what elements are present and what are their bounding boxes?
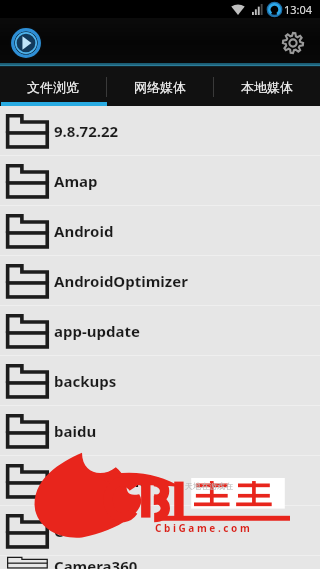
button[interactable]: C (0, 506, 320, 555)
button[interactable]: Settings (274, 24, 312, 62)
staticText: 13:04 (284, 2, 313, 17)
staticText: 9.8.72.22 (54, 121, 119, 141)
button[interactable]: Amap (0, 156, 320, 205)
staticText: 网络媒体 (134, 79, 186, 95)
staticText: 文件浏览 (27, 79, 79, 95)
staticText: C b i G a m e . c o m (155, 521, 250, 535)
staticText: C (54, 521, 64, 541)
staticText: Amap (54, 171, 98, 191)
button[interactable]: 文件浏览 (0, 67, 106, 106)
staticText: backups (54, 371, 117, 391)
button[interactable]: AndroidOptimizer (0, 256, 320, 305)
staticText: Android (54, 221, 114, 241)
staticText: app-update (54, 321, 140, 341)
staticText: Camera360 (54, 556, 138, 569)
button[interactable]: 网络媒体 (106, 67, 213, 106)
button[interactable]: backups (0, 356, 320, 405)
staticText: baidu (54, 421, 97, 441)
button[interactable]: Camera360 (0, 556, 320, 569)
button[interactable]: 9.8.72.22 (0, 106, 320, 155)
button[interactable]: baidu (0, 406, 320, 455)
button[interactable]: Android (0, 206, 320, 255)
staticText: Baidu_music (54, 471, 147, 491)
staticText: 本地媒体 (241, 79, 293, 95)
button[interactable]: 本地媒体 (213, 67, 320, 106)
button[interactable]: Play (7, 24, 45, 62)
staticText: AndroidOptimizer (54, 271, 188, 291)
staticText: 天地在游戏在 (185, 481, 233, 491)
button[interactable]: app-update (0, 306, 320, 355)
button[interactable]: Baidu_music (0, 456, 320, 505)
